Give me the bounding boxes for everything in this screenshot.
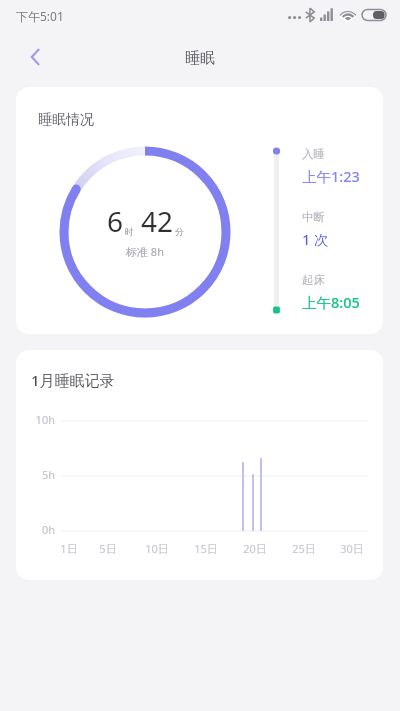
staticText: 5日 — [92, 541, 124, 556]
staticText: 起床 — [302, 273, 325, 287]
staticText: 6 — [107, 202, 124, 240]
staticText: 20日 — [239, 541, 271, 556]
staticText: 下午5:01 — [16, 8, 64, 24]
staticText: 42 — [141, 202, 174, 240]
staticText: 0h — [28, 522, 55, 537]
staticText: 15日 — [190, 541, 222, 556]
button[interactable]: 1月睡眠记录 — [16, 350, 383, 580]
staticText: 上午8:05 — [302, 292, 360, 312]
button[interactable]: 睡眠情况 — [16, 87, 383, 334]
staticText: 分 — [175, 226, 184, 237]
staticText: 1日 — [53, 541, 85, 556]
staticText: 30日 — [336, 541, 368, 556]
staticText: 时 — [125, 226, 134, 237]
staticText: 10日 — [141, 541, 173, 556]
staticText: 上午1:23 — [302, 166, 360, 186]
staticText: 入睡 — [302, 147, 325, 161]
staticText: 1 次 — [302, 229, 329, 249]
button[interactable]: Back — [20, 42, 50, 72]
staticText: 1月睡眠记录 — [31, 370, 115, 390]
staticText: 睡眠 — [185, 49, 215, 68]
staticText: 中断 — [302, 210, 325, 224]
staticText: 10h — [28, 412, 55, 427]
staticText: 5h — [28, 467, 55, 482]
staticText: 25日 — [288, 541, 320, 556]
staticText: 标准 8h — [126, 244, 164, 259]
staticText: 睡眠情况 — [38, 111, 94, 129]
